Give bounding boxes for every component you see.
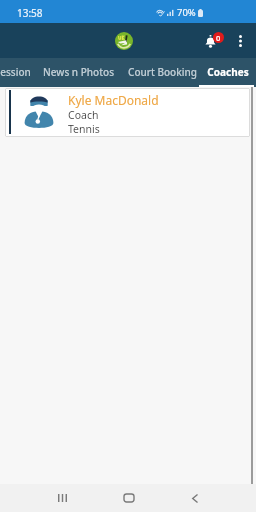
- button[interactable]: ession: [0, 58, 31, 87]
- button[interactable]: More options: [230, 25, 250, 57]
- staticText: Coaches: [207, 65, 249, 79]
- button[interactable]: Home: [115, 484, 143, 512]
- staticText: 13:58: [17, 6, 43, 20]
- staticText: ession: [0, 65, 31, 79]
- staticText: Kyle MacDonald: [68, 92, 159, 108]
- staticText: 0: [216, 33, 221, 43]
- staticText: News n Photos: [43, 65, 114, 79]
- button[interactable]: Recents: [48, 484, 76, 512]
- staticText: Tennis: [68, 122, 100, 136]
- button[interactable]: Back: [181, 484, 209, 512]
- button[interactable]: Kyle MacDonald: [5, 88, 250, 137]
- staticText: Coach: [68, 108, 99, 122]
- button[interactable]: News n Photos: [31, 58, 125, 87]
- button[interactable]: Club logo: [115, 32, 133, 50]
- button[interactable]: Coaches: [199, 58, 256, 87]
- staticText: Court Booking: [128, 65, 197, 79]
- button[interactable]: Court Booking: [125, 58, 199, 87]
- staticText: 70%: [177, 6, 196, 19]
- button[interactable]: Notifications: [198, 25, 224, 57]
